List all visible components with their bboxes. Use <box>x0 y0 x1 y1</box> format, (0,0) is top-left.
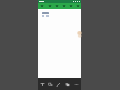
button[interactable]: Draw <box>54 78 63 90</box>
button[interactable]: Layers <box>63 78 72 90</box>
button[interactable]: More <box>72 78 81 90</box>
button[interactable]: Tab 4 <box>60 3 67 9</box>
button[interactable]: Text <box>38 78 46 90</box>
button[interactable]: Shapes <box>46 78 54 90</box>
button[interactable]: Tab 3 <box>53 3 60 9</box>
button[interactable]: Selected object <box>42 12 49 17</box>
button[interactable]: Tab 2 <box>46 3 53 9</box>
button[interactable]: Tab 6 <box>74 3 81 9</box>
button[interactable]: Tab 1 <box>38 3 46 9</box>
button[interactable]: Tab 5 <box>67 3 74 9</box>
